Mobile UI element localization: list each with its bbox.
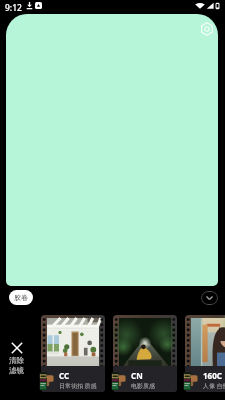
staticText: CN [131, 370, 143, 381]
staticText: 胶卷 [14, 293, 28, 302]
staticText: CC [59, 370, 70, 381]
button[interactable]: Collapse [201, 291, 218, 305]
staticText: 清除 滤镜 [9, 356, 24, 375]
staticText: 9:12 [5, 2, 22, 14]
button[interactable]: 清除 滤镜 [4, 342, 29, 375]
button[interactable]: 160C [185, 315, 225, 392]
staticText: 日常街拍 质感 [59, 382, 97, 390]
button[interactable]: CC [41, 315, 105, 392]
button[interactable]: 胶卷 [9, 290, 33, 305]
staticText: 人像 自然 [203, 382, 225, 390]
staticText: 160C [203, 370, 222, 381]
button[interactable]: Settings [198, 20, 216, 38]
staticText: 电影质感 [131, 382, 155, 390]
button[interactable]: CN [113, 315, 177, 392]
